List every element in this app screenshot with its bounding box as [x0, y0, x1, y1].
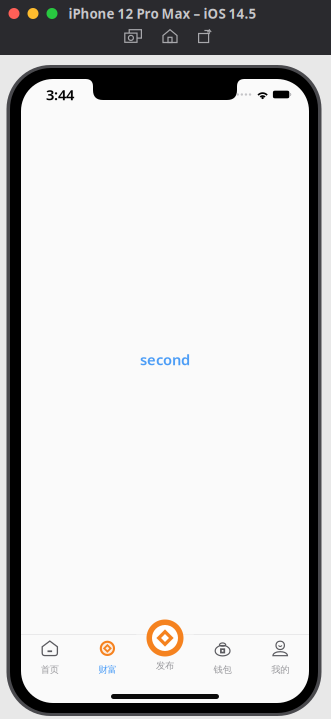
- staticText: second: [140, 349, 190, 369]
- staticText: iPhone 12 Pro Max – iOS 14.5: [68, 4, 256, 23]
- button[interactable]: Rotate: [198, 29, 212, 43]
- button[interactable]: 我的: [251, 635, 309, 681]
- staticText: 3:44: [46, 84, 74, 104]
- button[interactable]: Home: [162, 29, 178, 43]
- button[interactable]: 财富: [79, 635, 136, 681]
- button[interactable]: 钱包: [194, 635, 251, 681]
- button[interactable]: Screenshot: [124, 29, 142, 43]
- button[interactable]: 发布: [146, 619, 183, 656]
- staticText: 钱包: [214, 664, 232, 675]
- staticText: 发布: [156, 660, 174, 671]
- staticText: 我的: [271, 664, 289, 675]
- staticText: 财富: [98, 664, 116, 675]
- button[interactable]: 首页: [21, 635, 79, 681]
- staticText: 首页: [41, 664, 59, 675]
